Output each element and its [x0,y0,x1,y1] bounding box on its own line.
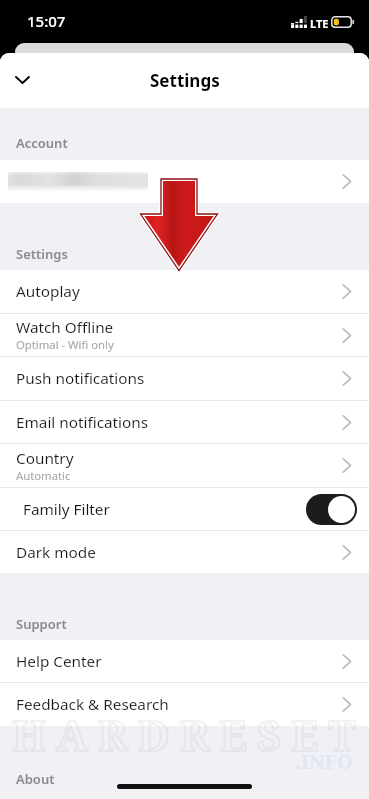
staticText: About [16,770,55,788]
staticText: Automatic [16,468,71,483]
staticText: Watch Offline [16,317,114,338]
button[interactable]: Collapse [7,65,37,95]
button[interactable]: Autoplay [0,270,369,314]
staticText: Settings [16,245,68,263]
staticText: Push notifications [16,368,145,389]
button[interactable]: Help Center [0,640,369,683]
staticText: Settings [150,69,220,92]
staticText: Email notifications [16,412,149,433]
button[interactable]: Country [0,444,369,488]
button[interactable]: Push notifications [0,357,369,401]
staticText: Autoplay [16,281,80,302]
staticText: Optimal - Wifi only [16,337,114,352]
staticText: Dark mode [16,542,96,563]
staticText: LTE [310,16,329,31]
button[interactable]: Watch Offline [0,314,369,357]
staticText: Support [16,615,67,633]
staticText: Help Center [16,651,102,672]
staticText: Feedback & Research [16,694,169,715]
staticText: Family Filter [23,499,110,520]
staticText: 15:07 [27,11,66,31]
button[interactable]: Feedback & Research [0,683,369,726]
staticText: Account [16,134,68,152]
staticText: HARDRESET [12,706,366,763]
button[interactable]: Email notifications [0,401,369,444]
staticText: Country [16,448,74,469]
staticText: .INFO [295,748,353,775]
button[interactable]: Family Filter [0,488,369,531]
button[interactable]: Dark mode [0,531,369,573]
button[interactable] [0,160,369,203]
